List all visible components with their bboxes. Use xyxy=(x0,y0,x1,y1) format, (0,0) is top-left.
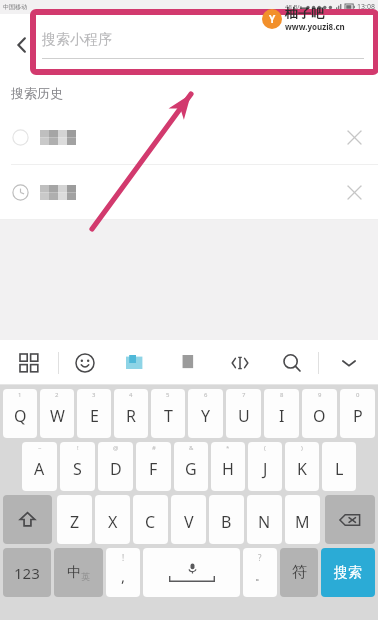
button[interactable]: 7 xyxy=(226,389,261,438)
staticText: 2 xyxy=(55,391,59,399)
staticText: 。 xyxy=(255,569,266,583)
staticText: 13:08 xyxy=(357,2,375,12)
staticText: & xyxy=(189,444,194,452)
staticText: ? xyxy=(258,552,262,563)
button[interactable]: Text edit xyxy=(214,340,266,385)
button[interactable]: ! xyxy=(106,548,140,597)
staticText: U xyxy=(238,405,250,427)
button[interactable]: N xyxy=(247,495,282,544)
button[interactable]: * xyxy=(211,442,245,491)
staticText: Q xyxy=(14,405,27,427)
staticText: T xyxy=(164,405,173,427)
staticText: Y xyxy=(269,12,276,26)
button[interactable]: Clipboard xyxy=(162,340,214,385)
staticText: 英 xyxy=(81,571,90,582)
staticText: , xyxy=(121,566,126,586)
staticText: 48 B/s xyxy=(285,3,303,11)
staticText: 符 xyxy=(292,563,307,582)
staticText: R xyxy=(126,405,136,427)
button[interactable]: ! xyxy=(60,442,95,491)
button[interactable]: ) xyxy=(285,442,319,491)
button[interactable]: 中 xyxy=(54,548,103,597)
staticText: G xyxy=(185,458,197,480)
button[interactable]: & xyxy=(174,442,208,491)
staticText: L xyxy=(335,458,344,480)
staticText: H xyxy=(222,458,234,480)
button[interactable]: L xyxy=(322,442,356,491)
button[interactable]: M xyxy=(285,495,320,544)
button[interactable]: 4 xyxy=(114,389,148,438)
button[interactable]: Back xyxy=(7,30,37,60)
button[interactable]: 0 xyxy=(340,389,375,438)
staticText: E xyxy=(90,405,99,427)
staticText: ! xyxy=(122,552,125,563)
staticText: S xyxy=(73,458,82,480)
button[interactable]: 6 xyxy=(188,389,223,438)
staticText: 3 xyxy=(92,391,96,399)
staticText: 中 xyxy=(67,564,81,582)
button[interactable]: 1 xyxy=(3,389,37,438)
staticText: O xyxy=(313,405,326,427)
staticText: 123 xyxy=(14,563,40,583)
button[interactable]: 搜索 xyxy=(321,548,375,597)
staticText: ) xyxy=(301,444,303,452)
staticText: www.youzi8.cn xyxy=(285,21,345,32)
staticText: M xyxy=(295,511,310,533)
staticText: K xyxy=(297,458,307,480)
button[interactable]: Space xyxy=(143,548,240,597)
staticText: X xyxy=(108,511,118,533)
button[interactable]: Shift xyxy=(3,495,52,544)
staticText: * xyxy=(226,444,230,452)
button[interactable]: Delete history item xyxy=(334,117,374,157)
staticText: 6 xyxy=(204,391,208,399)
staticText: ( xyxy=(264,444,266,452)
button[interactable]: ? xyxy=(243,548,277,597)
staticText: V xyxy=(184,511,194,533)
staticText: 搜索小程序 xyxy=(42,31,112,49)
staticText: 9 xyxy=(318,391,322,399)
button[interactable]: Search xyxy=(266,340,318,385)
button[interactable]: ( xyxy=(248,442,282,491)
button[interactable]: Z xyxy=(57,495,92,544)
staticText: 0 xyxy=(356,391,360,399)
button[interactable]: V xyxy=(171,495,206,544)
staticText: P xyxy=(353,405,363,427)
button[interactable]: 符 xyxy=(280,548,318,597)
button[interactable]: # xyxy=(136,442,171,491)
staticText: ~ xyxy=(38,444,42,452)
staticText: D xyxy=(110,458,122,480)
button[interactable]: Backspace xyxy=(325,495,375,544)
staticText: I xyxy=(279,405,285,427)
button[interactable]: 5 xyxy=(151,389,185,438)
button[interactable]: 搜索小程序 xyxy=(42,31,364,59)
button[interactable]: 123 xyxy=(3,548,51,597)
staticText: 搜索 xyxy=(334,564,362,582)
button[interactable]: 8 xyxy=(264,389,299,438)
button[interactable]: ~ xyxy=(22,442,57,491)
button[interactable]: Delete history item xyxy=(0,165,378,219)
button[interactable]: 3 xyxy=(77,389,111,438)
staticText: W xyxy=(50,405,65,427)
staticText: B xyxy=(221,511,232,533)
staticText: 搜索历史 xyxy=(11,85,63,101)
staticText: 1 xyxy=(18,391,22,399)
button[interactable]: Hide keyboard xyxy=(319,340,378,385)
staticText: 7 xyxy=(242,391,246,399)
button[interactable]: Delete history item xyxy=(334,172,374,212)
staticText: A xyxy=(34,458,45,480)
staticText: @ xyxy=(113,444,119,452)
staticText: Z xyxy=(70,511,80,533)
button[interactable]: @ xyxy=(98,442,133,491)
button[interactable]: Delete history item xyxy=(0,110,378,164)
button[interactable]: Emoji xyxy=(59,340,110,385)
button[interactable]: Sticker xyxy=(110,340,162,385)
staticText: 中国移动 xyxy=(3,3,27,11)
staticText: 柚子吧 xyxy=(285,5,324,21)
button[interactable]: C xyxy=(133,495,168,544)
button[interactable]: X xyxy=(95,495,130,544)
staticText: 5 xyxy=(166,391,170,399)
button[interactable]: 9 xyxy=(302,389,337,438)
button[interactable]: Keyboard menu xyxy=(0,340,58,385)
button[interactable]: 2 xyxy=(40,389,74,438)
button[interactable]: B xyxy=(209,495,244,544)
